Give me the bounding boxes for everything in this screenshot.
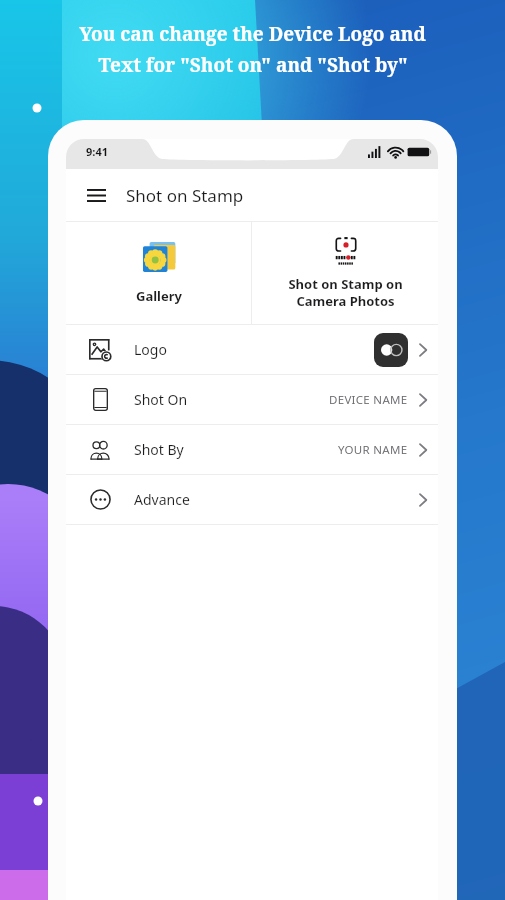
button[interactable]: Advance — [66, 475, 438, 524]
staticText: Logo — [134, 340, 167, 359]
staticText: DEVICE NAME — [329, 392, 408, 408]
button[interactable]: Shot On — [66, 375, 438, 424]
button[interactable]: Shot By — [66, 425, 438, 474]
button[interactable]: Gallery — [66, 222, 251, 324]
staticText: Shot on Stamp — [126, 184, 244, 207]
button[interactable]: Shot on Stamp on Camera Photos — [252, 222, 438, 324]
staticText: Shot By — [134, 440, 184, 459]
staticText: YOUR NAME — [338, 442, 408, 458]
staticText: Shot on Stamp on Camera Photos — [288, 275, 403, 310]
staticText: 9:41 — [86, 144, 108, 159]
staticText: You can change the Device Logo and — [79, 21, 426, 47]
button[interactable]: Choose logo — [374, 333, 408, 367]
staticText: Gallery — [136, 287, 182, 305]
button[interactable]: Logo — [66, 325, 438, 374]
staticText: Advance — [134, 490, 190, 509]
button[interactable]: Open navigation menu — [66, 169, 438, 221]
button[interactable]: Open navigation menu — [79, 178, 113, 212]
staticText: Shot On — [134, 390, 188, 409]
staticText: Text for "Shot on" and "Shot by" — [98, 52, 408, 78]
